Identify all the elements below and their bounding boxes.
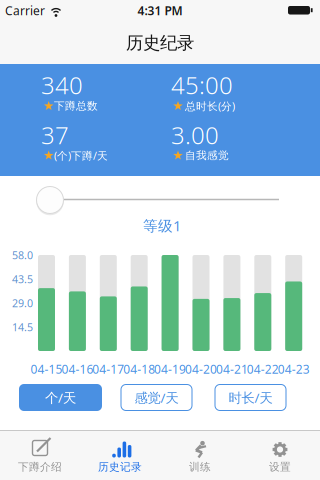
- staticText: 时长/天: [228, 389, 272, 406]
- staticText: (个)下蹲/天: [54, 148, 108, 163]
- button[interactable]: 个/天: [19, 384, 102, 411]
- staticText: Carrier: [5, 2, 45, 18]
- staticText: 04-15: [30, 361, 62, 377]
- button[interactable]: 时长/天: [215, 384, 286, 410]
- staticText: 14.5: [12, 320, 33, 334]
- button[interactable]: 下蹲介绍: [0, 430, 80, 480]
- button[interactable]: 设置: [240, 430, 320, 480]
- staticText: 感觉/天: [134, 389, 178, 406]
- staticText: 设置: [269, 460, 291, 473]
- staticText: 总时长(分): [185, 99, 235, 113]
- staticText: 45:00: [171, 69, 233, 101]
- staticText: 04-20: [185, 361, 217, 377]
- staticText: 37: [41, 119, 69, 151]
- staticText: 340: [41, 69, 83, 101]
- staticText: 29.0: [12, 296, 33, 310]
- staticText: 训练: [189, 460, 211, 473]
- staticText: 下蹲总数: [54, 99, 98, 112]
- staticText: 04-19: [154, 361, 186, 377]
- staticText: 历史记录: [98, 460, 142, 473]
- button[interactable]: 感觉/天: [121, 384, 192, 410]
- staticText: 04-21: [216, 361, 248, 377]
- staticText: 43.5: [12, 272, 33, 286]
- staticText: 04-18: [123, 361, 155, 377]
- staticText: 下蹲介绍: [18, 460, 62, 473]
- staticText: 04-22: [247, 361, 279, 377]
- staticText: 04-17: [92, 361, 124, 377]
- staticText: 历史纪录: [126, 32, 194, 54]
- staticText: 04-23: [278, 361, 310, 377]
- staticText: 4:31 PM: [137, 2, 182, 18]
- staticText: 3.00: [171, 119, 219, 151]
- staticText: 自我感觉: [185, 149, 229, 162]
- staticText: 04-16: [61, 361, 93, 377]
- button[interactable]: 训练: [160, 430, 240, 480]
- staticText: 个/天: [45, 389, 76, 406]
- button[interactable]: 历史记录: [80, 430, 160, 480]
- staticText: 58.0: [12, 248, 33, 262]
- staticText: 等级1: [143, 216, 181, 235]
